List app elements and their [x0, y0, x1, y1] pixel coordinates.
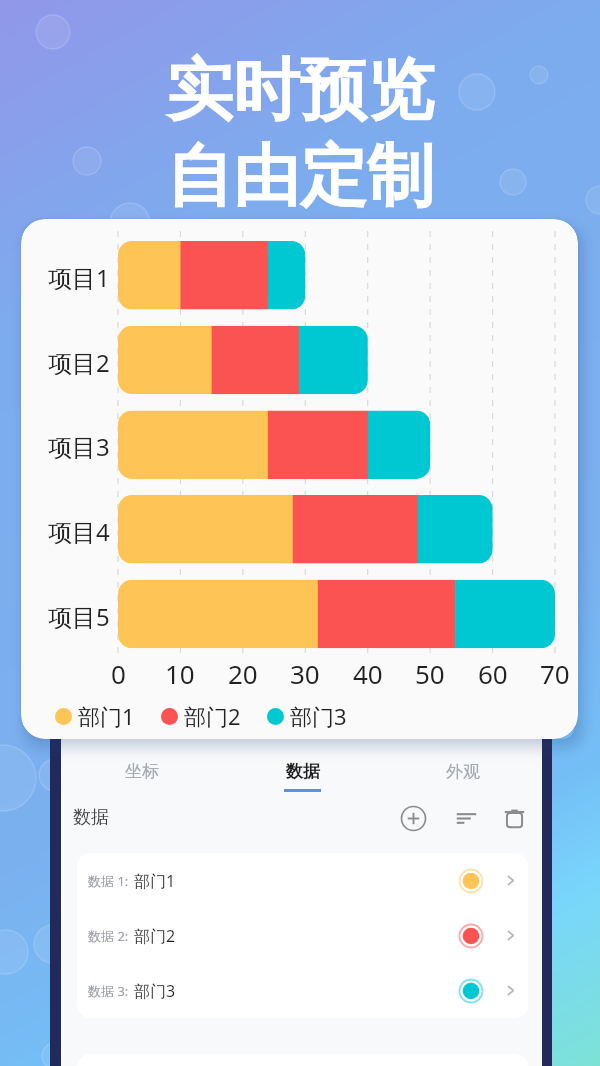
button[interactable]: 数据 1: [77, 853, 528, 908]
staticText: 部门3 [290, 701, 347, 731]
staticText: 70 [540, 656, 570, 691]
button[interactable]: 坐标 [61, 761, 222, 795]
staticText: 部门3 [134, 980, 176, 1002]
staticText: 数据 [286, 761, 320, 782]
button[interactable]: 数据 [222, 761, 382, 795]
staticText: 0 [111, 656, 126, 691]
staticText: 30 [290, 656, 320, 691]
staticText: 数据 [73, 806, 109, 829]
staticText: 40 [353, 656, 383, 691]
staticText: 60 [478, 656, 508, 691]
button[interactable]: Add [399, 804, 427, 832]
staticText: 数据 1: [88, 872, 129, 890]
staticText: 数据 3: [88, 982, 129, 1000]
staticText: 部门1 [134, 870, 176, 892]
staticText: 项目3 [48, 430, 110, 463]
staticText: 部门1 [78, 701, 135, 731]
staticText: 部门2 [184, 701, 241, 731]
button[interactable]: Delete [500, 804, 528, 832]
staticText: 坐标 [125, 761, 159, 782]
button[interactable]: 数据 2: [77, 908, 528, 963]
staticText: 项目5 [48, 600, 110, 633]
button[interactable]: 外观 [382, 761, 542, 795]
staticText: 自由定制 [166, 134, 434, 218]
staticText: 项目2 [48, 346, 110, 379]
button[interactable]: 数据 3: [77, 963, 528, 1018]
staticText: 项目1 [48, 261, 110, 294]
staticText: 项目4 [48, 515, 110, 548]
staticText: 数据 2: [88, 927, 129, 945]
button[interactable]: Sort [452, 804, 480, 832]
staticText: 20 [228, 656, 258, 691]
staticText: 外观 [446, 761, 480, 782]
staticText: 实时预览 [166, 48, 434, 132]
staticText: 部门2 [134, 925, 176, 947]
staticText: 10 [165, 656, 195, 691]
staticText: 50 [415, 656, 445, 691]
